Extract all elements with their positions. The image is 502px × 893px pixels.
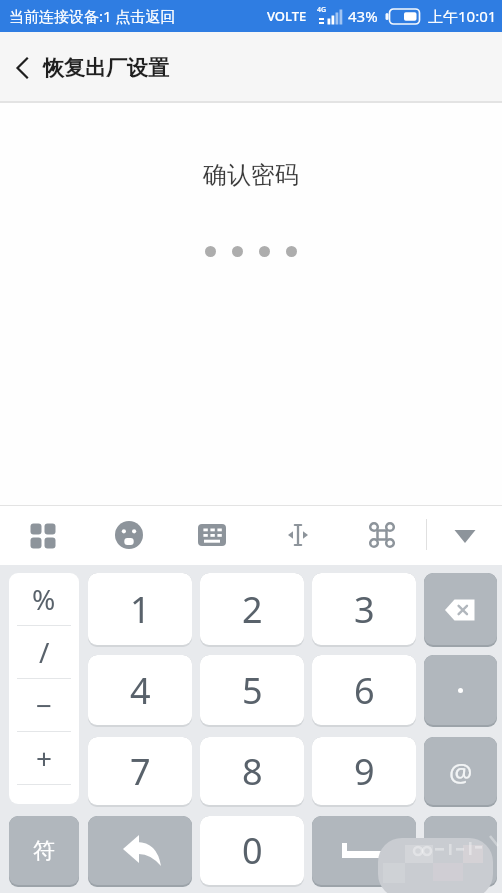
button[interactable]: 符 bbox=[9, 816, 79, 885]
staticText: 5 bbox=[242, 666, 263, 715]
button[interactable]: 恢复出厂设置 bbox=[14, 55, 169, 81]
staticText: 2 bbox=[242, 585, 263, 634]
staticText: VOLTE bbox=[267, 7, 307, 25]
staticText: − bbox=[36, 686, 53, 724]
staticText: 4G bbox=[317, 5, 327, 15]
button[interactable] bbox=[441, 511, 489, 559]
staticText: % bbox=[32, 580, 56, 618]
button[interactable]: 7 bbox=[88, 737, 192, 805]
button[interactable]: 8 bbox=[200, 737, 304, 805]
button[interactable]: 当前连接设备:1 点击返回 bbox=[9, 6, 176, 26]
staticText: 7 bbox=[130, 747, 151, 796]
staticText: 1 bbox=[130, 585, 151, 634]
staticText: 3 bbox=[354, 585, 375, 634]
staticText: / bbox=[39, 633, 50, 671]
button[interactable] bbox=[105, 511, 153, 559]
button[interactable] bbox=[358, 511, 406, 559]
button[interactable] bbox=[312, 816, 416, 885]
staticText: 确认密码 bbox=[203, 160, 299, 190]
staticText: 上午10:01 bbox=[428, 6, 497, 26]
button[interactable]: / bbox=[9, 626, 79, 678]
staticText: 6 bbox=[354, 666, 375, 715]
button[interactable] bbox=[188, 511, 236, 559]
button[interactable]: + bbox=[9, 732, 79, 784]
button[interactable]: − bbox=[9, 679, 79, 731]
staticText: 43% bbox=[348, 6, 378, 26]
button[interactable]: 0 bbox=[200, 816, 304, 885]
staticText: @ bbox=[449, 754, 473, 789]
staticText: 恢复出厂设置 bbox=[43, 55, 169, 81]
button[interactable]: 5 bbox=[200, 655, 304, 725]
button[interactable] bbox=[88, 816, 192, 885]
staticText: 符 bbox=[33, 837, 55, 865]
button[interactable] bbox=[19, 511, 67, 559]
button[interactable] bbox=[424, 655, 497, 725]
button[interactable]: 6 bbox=[312, 655, 416, 725]
button[interactable]: 2 bbox=[200, 573, 304, 645]
staticText: 当前连接设备:1 点击返回 bbox=[9, 6, 176, 26]
button[interactable] bbox=[424, 573, 497, 645]
staticText: 4 bbox=[130, 666, 151, 715]
staticText: 8 bbox=[242, 747, 263, 796]
button[interactable] bbox=[274, 511, 322, 559]
staticText: 9 bbox=[354, 747, 375, 796]
button[interactable]: 1 bbox=[88, 573, 192, 645]
button[interactable]: % bbox=[9, 573, 79, 625]
button[interactable]: @ bbox=[424, 737, 497, 805]
button[interactable]: 3 bbox=[312, 573, 416, 645]
button[interactable]: 9 bbox=[312, 737, 416, 805]
staticText: + bbox=[36, 739, 53, 777]
staticText: 0 bbox=[242, 826, 263, 875]
button[interactable]: 4 bbox=[88, 655, 192, 725]
button[interactable] bbox=[424, 816, 497, 885]
